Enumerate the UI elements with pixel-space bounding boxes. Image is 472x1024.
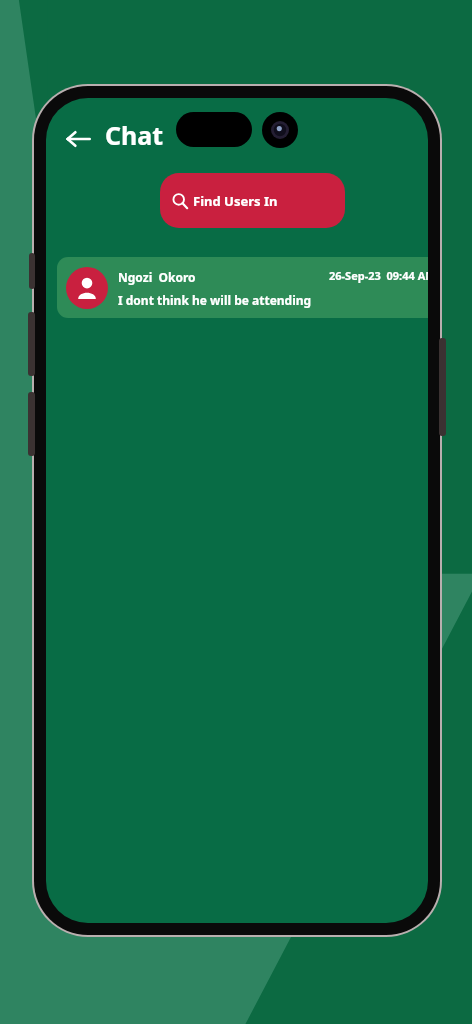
- staticText: 26-Sep-23 09:44 AM: [329, 268, 428, 283]
- staticText: Chat: [105, 118, 164, 152]
- staticText: Find Users In Organization: [193, 192, 333, 210]
- button[interactable]: Ngozi Okoro: [57, 257, 428, 318]
- staticText: I dont think he will be attending: [118, 292, 312, 308]
- staticText: Ngozi Okoro: [118, 269, 196, 285]
- button[interactable]: Back: [56, 117, 100, 161]
- button[interactable]: Find Users In Organization: [160, 173, 345, 228]
